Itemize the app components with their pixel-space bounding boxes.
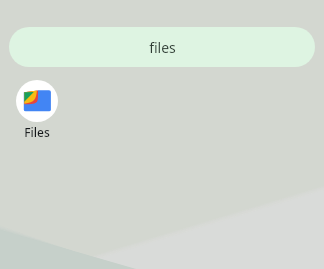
button[interactable]: Files [16, 80, 58, 140]
button[interactable]: files [9, 27, 315, 67]
staticText: files [149, 38, 176, 57]
staticText: Files [24, 124, 50, 140]
